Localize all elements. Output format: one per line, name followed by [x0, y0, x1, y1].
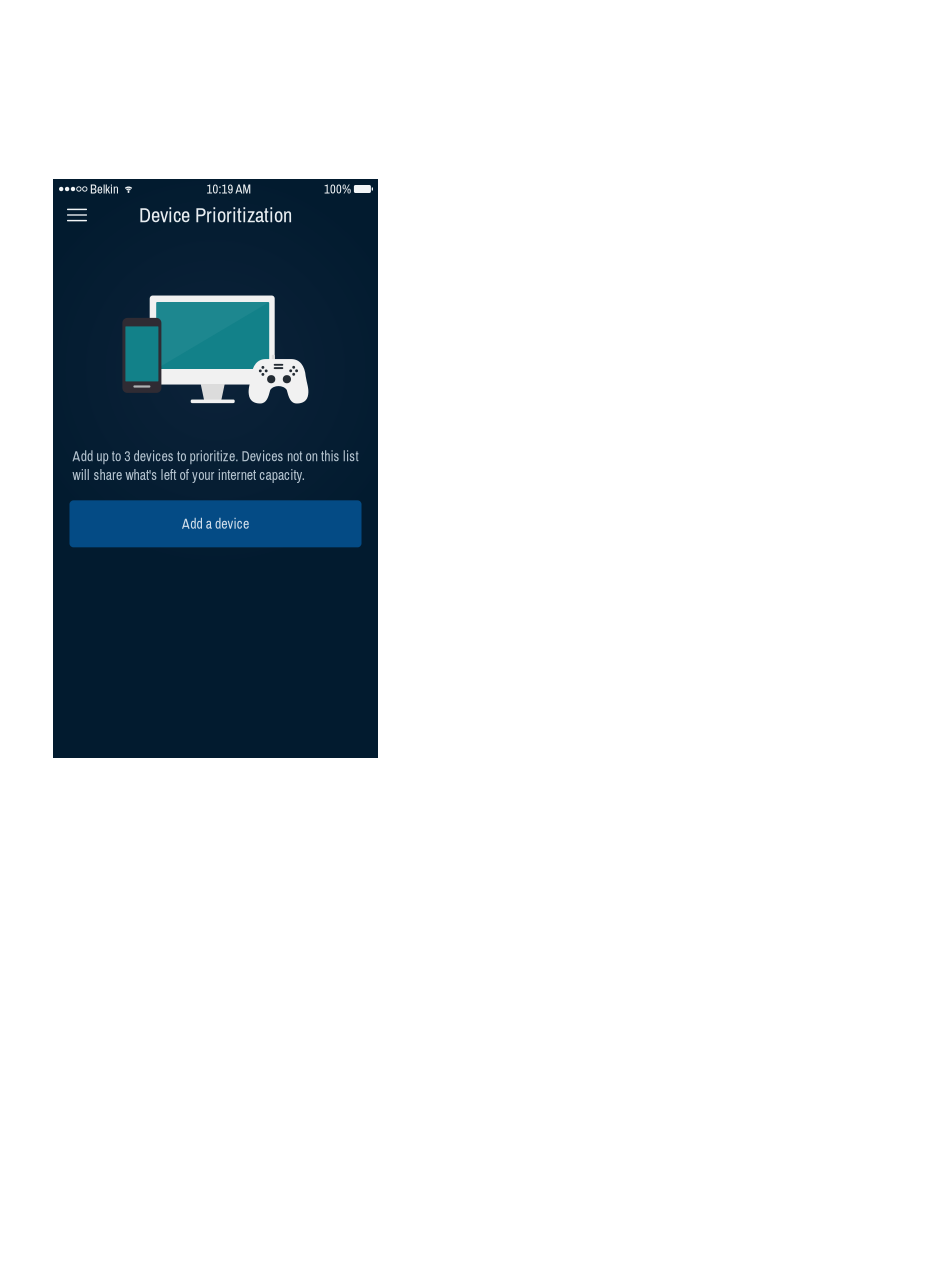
button[interactable]: Menu — [60, 200, 94, 230]
staticText: 100% — [324, 181, 351, 197]
staticText: Device Prioritization — [139, 201, 292, 229]
staticText: Add up to 3 devices to prioritize. Devic… — [73, 447, 358, 484]
staticText: 10:19 AM — [206, 181, 251, 197]
button[interactable]: Add a device — [69, 500, 361, 547]
staticText: Add a device — [182, 514, 249, 533]
staticText: Belkin — [90, 181, 119, 197]
